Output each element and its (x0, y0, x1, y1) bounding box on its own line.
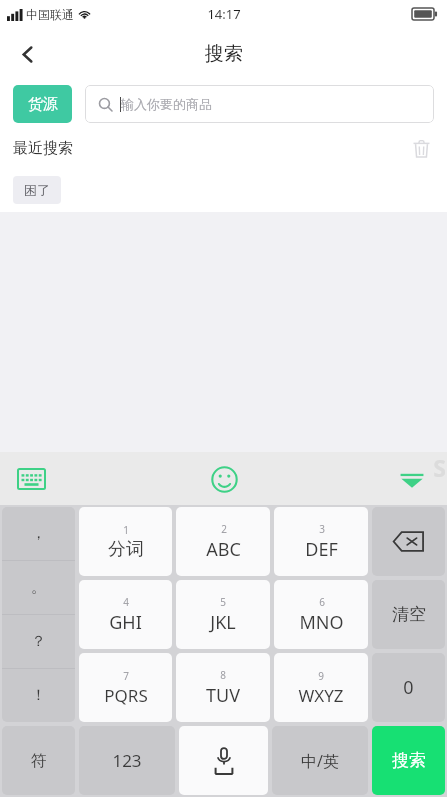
staticText: 符 (31, 751, 47, 771)
staticText: MNO (299, 610, 344, 635)
button[interactable]: 7 (79, 653, 172, 722)
button[interactable]: 123 (79, 726, 175, 795)
staticText: 0 (403, 675, 414, 700)
button[interactable]: 4 (79, 580, 172, 649)
button[interactable]: 符 (2, 726, 75, 795)
staticText: 中国联通 (26, 7, 74, 22)
staticText: 14:17 (207, 5, 241, 23)
button[interactable]: 1 (79, 507, 172, 576)
button[interactable]: 6 (274, 580, 368, 649)
staticText: 搜索 (205, 42, 243, 66)
button[interactable]: 8 (176, 653, 270, 722)
button[interactable]: 3 (274, 507, 368, 576)
staticText: 8 (220, 668, 226, 682)
staticText: S (433, 452, 446, 483)
staticText: 。 (31, 578, 46, 597)
staticText: GHI (109, 610, 142, 635)
button[interactable]: Emoji (201, 456, 247, 502)
staticText: JKL (210, 610, 236, 635)
staticText: 货源 (28, 95, 58, 114)
button[interactable]: 困了 (13, 176, 61, 204)
button[interactable]: Clear search history (404, 131, 438, 165)
button[interactable]: 2 (176, 507, 270, 576)
staticText: 中/英 (301, 750, 339, 772)
staticText: 2 (221, 522, 227, 536)
staticText: 输入你要的商品 (121, 96, 212, 112)
button[interactable]: 输入你要的商品 (85, 85, 434, 123)
staticText: 9 (318, 669, 324, 683)
staticText: 搜索 (392, 750, 426, 771)
staticText: ABC (206, 537, 241, 562)
staticText: 6 (319, 595, 325, 609)
staticText: 3 (319, 522, 325, 536)
staticText: 清空 (392, 604, 426, 625)
button[interactable]: 中/英 (272, 726, 368, 795)
staticText: 123 (112, 749, 142, 772)
button[interactable]: Switch keyboard (8, 456, 54, 502)
staticText: WXYZ (298, 684, 344, 707)
button[interactable]: Hide keyboard (389, 456, 435, 502)
staticText: ？ (31, 632, 46, 651)
button[interactable]: 清空 (372, 580, 445, 649)
staticText: TUV (206, 683, 240, 708)
staticText: 1 (123, 523, 129, 537)
button[interactable]: Back (0, 28, 54, 80)
staticText: 7 (123, 669, 129, 683)
button[interactable]: Backspace (372, 507, 445, 576)
staticText: 4 (123, 595, 129, 609)
button[interactable]: Voice input (179, 726, 268, 795)
staticText: 困了 (24, 182, 50, 198)
button[interactable]: 0 (372, 653, 445, 722)
button[interactable]: ， (2, 507, 75, 722)
staticText: 5 (220, 595, 226, 609)
staticText: DEF (305, 537, 338, 562)
staticText: ！ (31, 686, 46, 705)
staticText: 最近搜索 (13, 139, 73, 158)
staticText: ， (31, 524, 46, 543)
button[interactable]: 5 (176, 580, 270, 649)
button[interactable]: 搜索 (372, 726, 445, 795)
button[interactable]: 9 (274, 653, 368, 722)
staticText: 分词 (108, 538, 144, 561)
staticText: PQRS (104, 684, 148, 707)
button[interactable]: 货源 (13, 85, 72, 123)
